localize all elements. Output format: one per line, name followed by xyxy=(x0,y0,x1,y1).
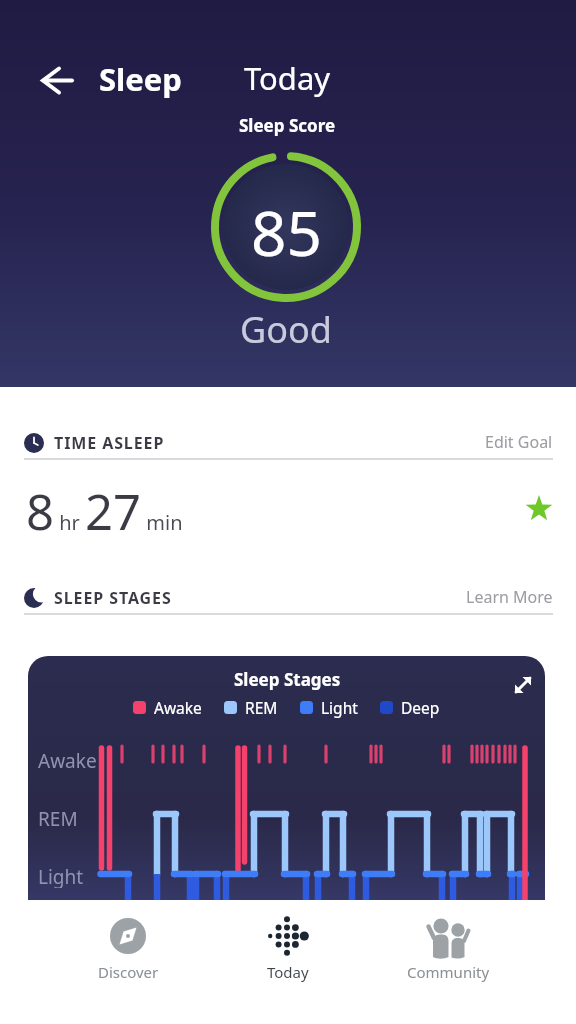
button[interactable]: Discover xyxy=(68,905,188,995)
button[interactable] xyxy=(0,580,576,618)
staticText: Discover xyxy=(98,962,159,982)
staticText: Awake xyxy=(38,748,97,772)
staticText: Sleep Score xyxy=(239,114,336,137)
staticText: REM xyxy=(245,697,278,718)
staticText: 85 xyxy=(251,190,322,266)
staticText: Sleep xyxy=(99,58,182,98)
button[interactable]: Community xyxy=(388,905,508,995)
staticText: Today xyxy=(244,57,331,99)
staticText: Edit Goal xyxy=(485,431,553,453)
staticText: Learn More xyxy=(466,586,553,608)
staticText: Deep xyxy=(401,697,440,718)
staticText: Awake xyxy=(154,697,202,718)
staticText: Today xyxy=(267,962,309,982)
button[interactable] xyxy=(0,424,576,462)
button[interactable]: Today xyxy=(228,905,348,995)
staticText: Community xyxy=(407,962,490,982)
button[interactable] xyxy=(28,62,72,106)
staticText: SLEEP STAGES xyxy=(54,587,172,609)
staticText: Light xyxy=(38,864,84,888)
button[interactable]: Today xyxy=(226,57,348,99)
staticText: Good xyxy=(240,305,332,351)
staticText: TIME ASLEEP xyxy=(54,432,165,454)
staticText: Sleep Stages xyxy=(234,668,341,691)
button[interactable]: Sleep Stages xyxy=(28,656,545,926)
staticText: REM xyxy=(38,806,78,830)
staticText: 8 hr 27 min xyxy=(26,478,183,540)
staticText: Light xyxy=(321,697,358,718)
